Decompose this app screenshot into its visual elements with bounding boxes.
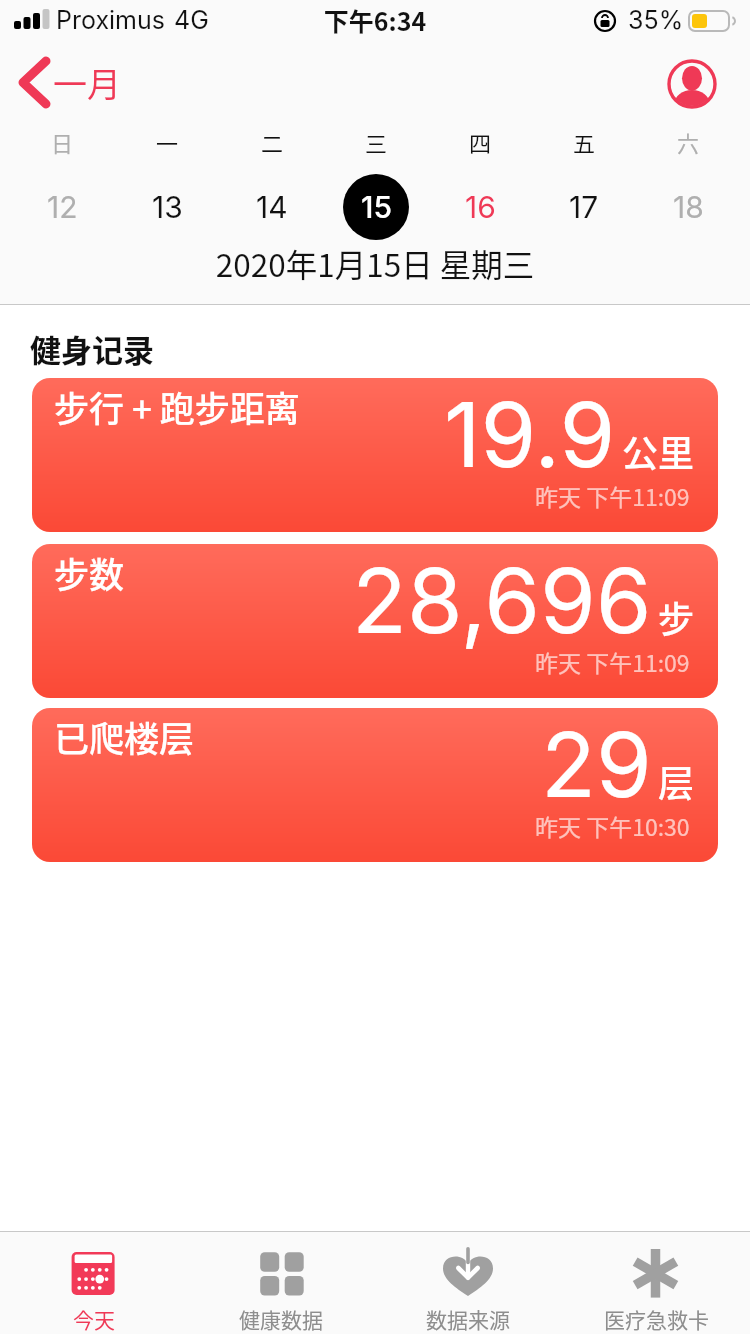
- button[interactable]: 14: [220, 172, 324, 242]
- staticText: 16: [465, 189, 496, 225]
- staticText: 29: [541, 710, 652, 819]
- staticText: 12: [47, 189, 78, 225]
- staticText: 下午6:34: [0, 2, 750, 38]
- staticText: 昨天 下午11:09: [535, 645, 690, 678]
- staticText: 步行 + 跑步距离: [54, 381, 300, 432]
- button[interactable]: 13: [115, 172, 220, 242]
- staticText: 健身记录: [30, 326, 154, 371]
- button[interactable]: 已爬楼层: [32, 708, 718, 862]
- staticText: 已爬楼层: [54, 711, 195, 762]
- staticText: 18: [673, 189, 704, 225]
- staticText: 17: [569, 189, 599, 225]
- staticText: 13: [152, 189, 183, 225]
- staticText: 昨天 下午11:09: [535, 479, 690, 512]
- staticText: 19.9: [444, 380, 616, 489]
- staticText: 医疗急救卡: [604, 1304, 709, 1334]
- staticText: 六: [677, 126, 700, 158]
- button[interactable]: 17: [532, 172, 636, 242]
- button[interactable]: 今天: [0, 1231, 187, 1334]
- staticText: 一月: [53, 58, 121, 107]
- staticText: 层: [658, 755, 695, 807]
- button[interactable]: 医疗急救卡: [562, 1231, 750, 1334]
- button[interactable]: 一月: [17, 56, 121, 108]
- staticText: 35%: [628, 5, 684, 35]
- button[interactable]: 16: [428, 172, 532, 242]
- staticText: 15: [361, 189, 392, 225]
- staticText: 二: [261, 126, 284, 158]
- button[interactable]: [668, 60, 716, 108]
- button[interactable]: 18: [636, 172, 740, 242]
- staticText: 28,696: [352, 546, 652, 655]
- staticText: 昨天 下午10:30: [535, 809, 690, 842]
- staticText: 步数: [54, 547, 125, 598]
- staticText: 三: [365, 126, 388, 158]
- staticText: Proximus: [56, 5, 165, 35]
- staticText: 公里: [622, 425, 695, 477]
- button[interactable]: 15: [324, 172, 428, 242]
- staticText: 4G: [174, 5, 209, 35]
- staticText: 日: [51, 126, 74, 158]
- staticText: 四: [469, 126, 492, 158]
- staticText: 一: [156, 126, 179, 158]
- button[interactable]: 健康数据: [187, 1231, 374, 1334]
- staticText: 五: [573, 126, 596, 158]
- staticText: 步: [658, 591, 695, 643]
- button[interactable]: 步数: [32, 544, 718, 698]
- staticText: 今天: [73, 1304, 115, 1334]
- staticText: 14: [256, 189, 288, 225]
- button[interactable]: 数据来源: [374, 1231, 562, 1334]
- staticText: 数据来源: [426, 1304, 510, 1334]
- staticText: 2020年1月15日 星期三: [0, 240, 750, 286]
- button[interactable]: 12: [10, 172, 115, 242]
- button[interactable]: 步行 + 跑步距离: [32, 378, 718, 532]
- staticText: 健康数据: [239, 1304, 323, 1334]
